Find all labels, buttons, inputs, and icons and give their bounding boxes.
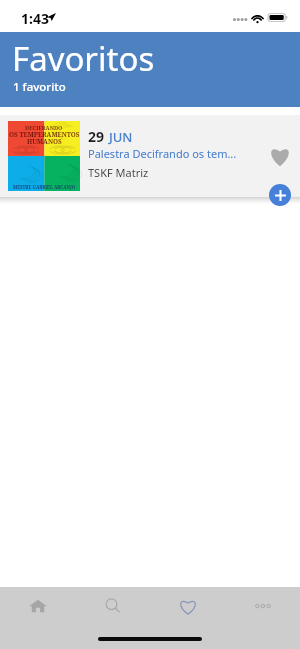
staticText: Favoritos [12,36,155,81]
button[interactable]: More [225,588,300,624]
button[interactable]: DECIFRANDO [0,115,300,197]
staticText: 1 favorito [13,79,66,95]
button[interactable]: Add [269,184,291,206]
staticText: JUN [109,128,133,146]
staticText: 1:43 [21,9,49,28]
staticText: Palestra Decifrando os tem... [88,146,237,161]
staticText: DECIFRANDO [25,124,63,131]
staticText: 29 [88,127,105,146]
staticText: TSKF Matriz [88,165,149,180]
button[interactable]: Home [0,588,75,624]
staticText: HUMANOS [27,137,62,146]
staticText: OS TEMPERAMENTOS [9,130,80,139]
staticText: MESTRE GABRIEL ARCANJO [13,184,76,190]
button[interactable]: Search [75,588,150,624]
button[interactable]: Favorite [260,115,300,197]
button[interactable]: Favorites [150,588,225,624]
